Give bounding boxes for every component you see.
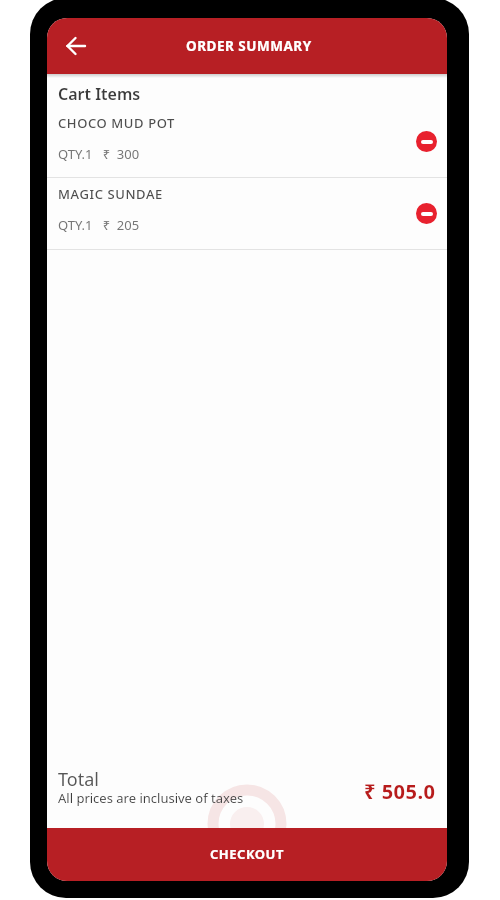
- staticText: QTY.1 ₹ 205: [58, 216, 140, 234]
- staticText: ORDER SUMMARY: [186, 37, 312, 55]
- staticText: CHECKOUT: [210, 845, 284, 863]
- staticText: QTY.1 ₹ 300: [58, 145, 140, 163]
- staticText: ₹ 505.0: [364, 778, 436, 805]
- staticText: MAGIC SUNDAE: [58, 185, 163, 203]
- button[interactable]: [63, 33, 89, 59]
- button[interactable]: CHECKOUT: [47, 828, 447, 881]
- staticText: All prices are inclusive of taxes: [58, 789, 244, 807]
- button[interactable]: CHOCO MUD POT: [47, 105, 447, 177]
- staticText: CHOCO MUD POT: [58, 114, 175, 132]
- staticText: Cart Items: [58, 83, 141, 105]
- button[interactable]: [416, 203, 437, 224]
- staticText: Total: [58, 767, 99, 792]
- button[interactable]: [416, 131, 437, 152]
- button[interactable]: MAGIC SUNDAE: [47, 178, 447, 249]
